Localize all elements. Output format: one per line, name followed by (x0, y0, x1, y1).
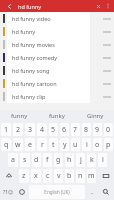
button[interactable]: More options (103, 1, 113, 11)
staticText: hd funny cartoon (12, 80, 57, 87)
button[interactable]: ?1☺ (1, 185, 15, 199)
button[interactable]: . (87, 185, 97, 199)
staticText: hd funny (18, 3, 42, 10)
button[interactable]: 1 (1, 123, 11, 136)
button[interactable]: Search (99, 185, 113, 199)
button[interactable]: hd funny (7, 25, 90, 38)
button[interactable]: English (UK) (29, 185, 85, 199)
button[interactable]: u (71, 138, 80, 151)
staticText: 5 (51, 125, 56, 135)
button[interactable]: 6 (60, 123, 69, 136)
staticText: Ginny (87, 112, 104, 120)
button[interactable]: b (65, 169, 74, 183)
staticText: . (91, 187, 93, 197)
staticText: a (11, 155, 15, 165)
button[interactable]: Clear (93, 1, 103, 11)
button[interactable]: c (43, 169, 52, 183)
button[interactable]: 2 (13, 123, 23, 136)
staticText: g (56, 155, 61, 165)
staticText: hd funny movies (12, 41, 55, 48)
staticText: s (23, 155, 27, 165)
staticText: e (28, 140, 32, 150)
staticText: 1 (4, 125, 9, 135)
button[interactable]: f (43, 153, 52, 167)
button[interactable]: 4 (37, 123, 47, 136)
staticText: hd funny (12, 28, 36, 35)
staticText: t (52, 140, 55, 150)
button[interactable]: 3 (25, 123, 35, 136)
staticText: d (34, 155, 39, 165)
staticText: i (86, 140, 88, 150)
button[interactable]: s (20, 153, 30, 167)
button[interactable]: j (76, 153, 85, 167)
button[interactable]: q (1, 138, 11, 151)
button[interactable]: Back (4, 1, 14, 11)
staticText: 9 (95, 125, 100, 135)
button[interactable]: hd funny song (7, 64, 90, 77)
staticText: h (67, 155, 72, 165)
staticText: w (15, 140, 21, 150)
staticText: u (73, 140, 78, 150)
staticText: funky (49, 112, 65, 120)
button[interactable]: n (76, 169, 85, 183)
button[interactable]: l (98, 153, 107, 167)
button[interactable]: g (54, 153, 63, 167)
staticText: b (67, 171, 72, 181)
button[interactable]: Shift (1, 169, 17, 183)
staticText: ?1☺ (3, 189, 14, 196)
button[interactable]: w (13, 138, 23, 151)
staticText: n (78, 171, 83, 181)
staticText: 3 (28, 125, 33, 135)
staticText: 2 (16, 125, 21, 135)
staticText: English (UK) (44, 189, 70, 195)
button[interactable]: hd funny video (7, 12, 90, 25)
button[interactable]: d (32, 153, 41, 167)
staticText: 4 (40, 125, 45, 135)
staticText: c (46, 171, 50, 181)
button[interactable]: h (65, 153, 74, 167)
staticText: hd funny comedy (12, 54, 57, 61)
button[interactable]: hd funny cartoon (7, 77, 90, 90)
button[interactable]: hd funny movies (7, 38, 90, 51)
staticText: 8 (84, 125, 89, 135)
button[interactable]: 9 (93, 123, 102, 136)
button[interactable]: Backspace (98, 169, 113, 183)
button[interactable]: y (60, 138, 69, 151)
staticText: f (46, 155, 49, 165)
staticText: 6 (62, 125, 67, 135)
button[interactable]: 5 (49, 123, 58, 136)
button[interactable]: k (87, 153, 96, 167)
button[interactable]: i (82, 138, 91, 151)
button[interactable]: funky (38, 110, 76, 122)
button[interactable]: r (37, 138, 47, 151)
button[interactable]: t (49, 138, 58, 151)
button[interactable]: 7 (71, 123, 80, 136)
button[interactable]: e (25, 138, 35, 151)
button[interactable]: a (8, 153, 18, 167)
button[interactable]: z (19, 169, 29, 183)
staticText: z (22, 171, 26, 181)
staticText: 7 (73, 125, 78, 135)
button[interactable]: hd funny comedy (7, 51, 90, 64)
staticText: r (41, 140, 44, 150)
button[interactable]: m (87, 169, 96, 183)
button[interactable]: v (54, 169, 63, 183)
staticText: m (88, 171, 95, 181)
staticText: funny (11, 112, 28, 120)
staticText: y (63, 140, 67, 150)
staticText: p (106, 140, 111, 150)
button[interactable]: funny (0, 110, 38, 122)
staticText: l (102, 155, 104, 165)
staticText: o (95, 140, 100, 150)
button[interactable]: hd funny clip (7, 90, 90, 103)
button[interactable]: x (31, 169, 41, 183)
staticText: hd funny song (12, 67, 50, 74)
button[interactable]: Settings (17, 185, 27, 199)
staticText: q (4, 140, 9, 150)
button[interactable]: 0 (104, 123, 113, 136)
button[interactable]: p (104, 138, 113, 151)
staticText: k (90, 155, 94, 165)
button[interactable]: o (93, 138, 102, 151)
button[interactable]: 8 (82, 123, 91, 136)
button[interactable]: Ginny (76, 110, 114, 122)
